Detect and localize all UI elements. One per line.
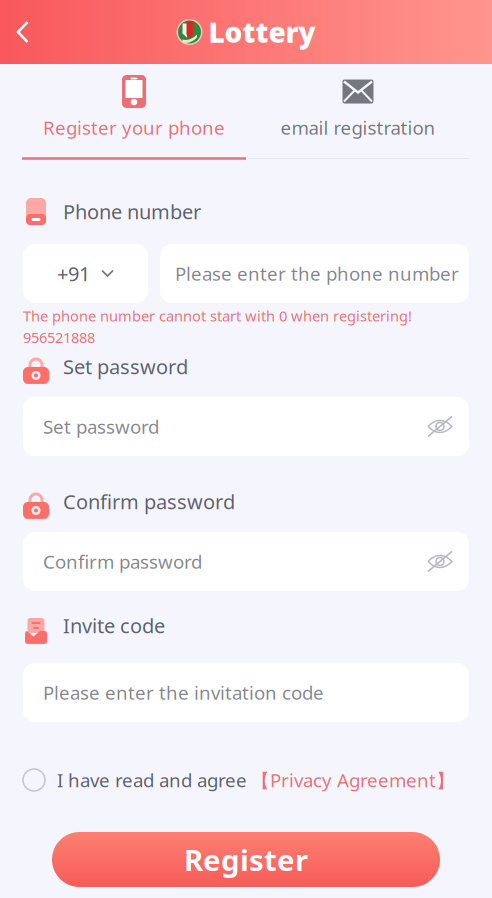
- staticText: 【Privacy Agreement】: [251, 768, 455, 792]
- staticText: Register your phone: [43, 115, 225, 140]
- staticText: I have read and agree: [57, 768, 247, 792]
- button[interactable]: I have read and agree: [0, 766, 492, 794]
- staticText: email registration: [280, 115, 435, 140]
- staticText: The phone number cannot start with 0 whe…: [23, 306, 412, 325]
- staticText: Confirm password: [63, 488, 235, 515]
- staticText: Set password: [63, 353, 188, 380]
- button[interactable]: email registration: [246, 64, 470, 157]
- staticText: Lottery: [208, 13, 315, 51]
- staticText: Confirm password: [43, 549, 202, 574]
- staticText: Register: [184, 840, 308, 879]
- staticText: +91: [57, 260, 90, 287]
- button[interactable]: Register: [52, 832, 440, 887]
- button[interactable]: Register your phone: [22, 64, 246, 157]
- staticText: Please enter the phone number: [175, 261, 459, 286]
- staticText: Phone number: [63, 198, 201, 225]
- staticText: Invite code: [63, 612, 165, 639]
- staticText: 956521888: [23, 327, 95, 347]
- staticText: Please enter the invitation code: [43, 680, 324, 705]
- staticText: Set password: [43, 414, 159, 439]
- button[interactable]: +91: [23, 244, 148, 303]
- button[interactable]: Back: [0, 0, 46, 64]
